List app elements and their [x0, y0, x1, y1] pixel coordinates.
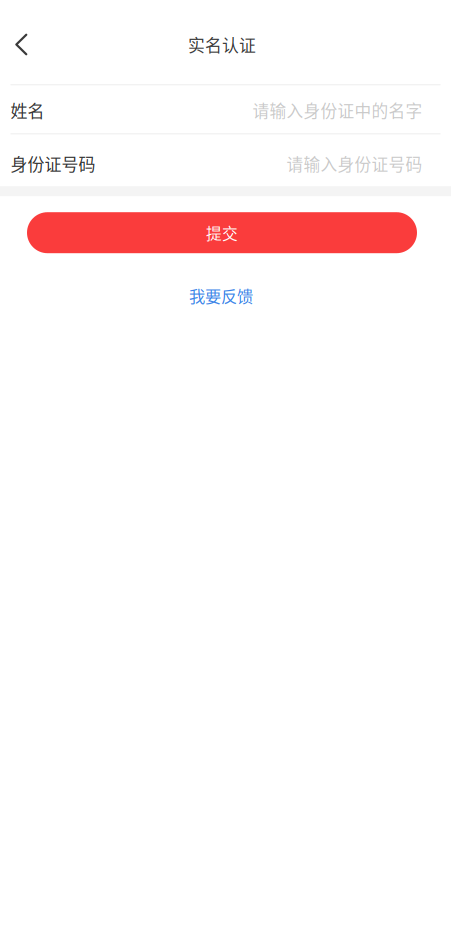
staticText: 请输入身份证号码 [286, 151, 422, 175]
staticText: 请输入身份证中的名字 [252, 98, 422, 122]
button[interactable]: 提交 [27, 212, 417, 253]
button[interactable]: Back [0, 22, 43, 66]
button[interactable]: 身份证号码 [0, 135, 451, 186]
button[interactable]: 我要反馈 [175, 277, 267, 314]
button[interactable]: 姓名 [0, 86, 451, 133]
staticText: 实名认证 [188, 32, 256, 57]
staticText: 身份证号码 [10, 151, 95, 176]
staticText: 提交 [206, 221, 238, 244]
staticText: 我要反馈 [189, 284, 253, 307]
staticText: 姓名 [10, 98, 44, 122]
